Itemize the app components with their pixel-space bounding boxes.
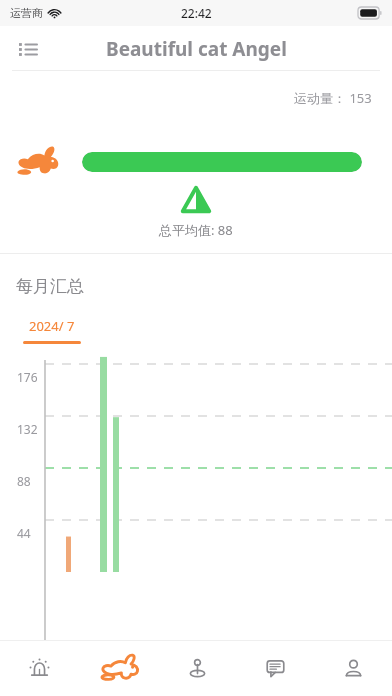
staticText: 总平均值: 88 [159, 221, 233, 239]
staticText: 每月汇总 [16, 276, 84, 297]
staticText: 运动量： 153 [294, 89, 372, 107]
staticText: 44 [17, 525, 31, 541]
button[interactable]: Profile [314, 641, 392, 696]
button[interactable]: Alarm [0, 641, 79, 696]
button[interactable]: 2024/ 7 [22, 317, 82, 344]
button[interactable] [82, 152, 362, 172]
button[interactable]: Messages [236, 641, 314, 696]
button[interactable]: Menu [6, 27, 50, 71]
staticText: 2024/ 7 [29, 317, 75, 335]
staticText: 132 [17, 421, 38, 437]
staticText: 22:42 [181, 5, 212, 21]
button[interactable]: Pet [79, 641, 158, 696]
staticText: 176 [17, 369, 38, 385]
staticText: 运营商 [10, 6, 43, 20]
button[interactable]: Location [158, 641, 236, 696]
staticText: 88 [17, 473, 31, 489]
staticText: Beautiful cat Angel [106, 36, 287, 62]
